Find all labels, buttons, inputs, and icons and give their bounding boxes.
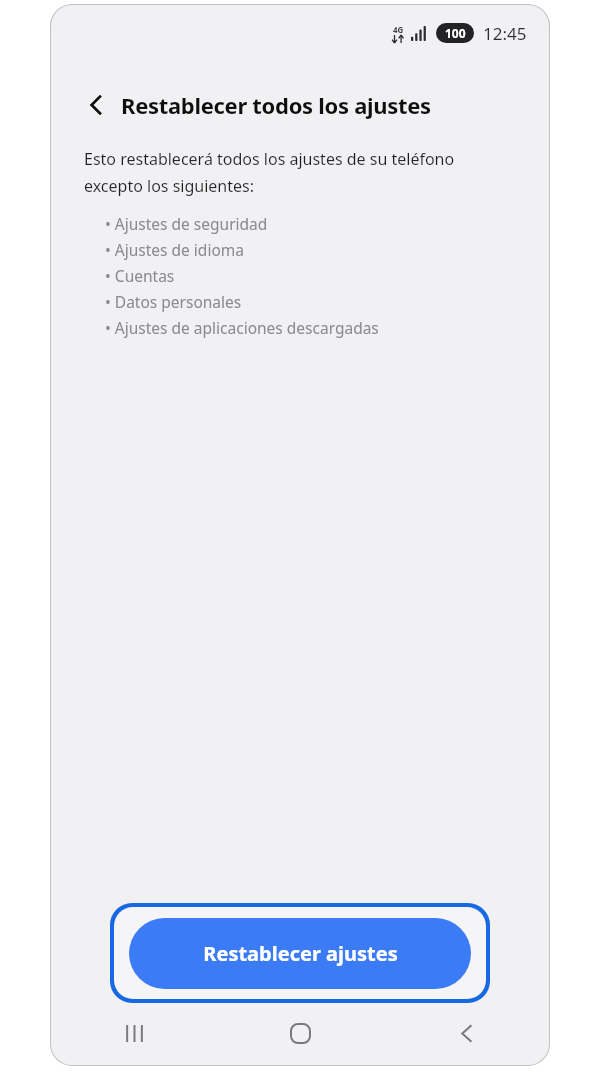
staticText: • Ajustes de aplicaciones descargadas [105, 317, 379, 338]
staticText: Esto restablecerá todos los ajustes de s… [84, 148, 515, 197]
button[interactable]: Back [75, 84, 117, 126]
staticText: • Cuentas [105, 265, 175, 286]
staticText: • Ajustes de seguridad [105, 213, 268, 234]
staticText: Restablecer ajustes [203, 940, 398, 967]
staticText: 12:45 [483, 22, 527, 45]
staticText: • Datos personales [105, 291, 242, 312]
staticText: Restablecer todos los ajustes [121, 90, 431, 120]
staticText: 100 [445, 25, 466, 41]
staticText: 4G [393, 24, 404, 35]
button[interactable]: Home [217, 1005, 383, 1061]
button[interactable]: Back [383, 1005, 549, 1061]
button[interactable]: Restablecer ajustes [110, 903, 490, 1003]
button[interactable]: Recents [51, 1005, 217, 1061]
staticText: • Ajustes de idioma [105, 239, 244, 260]
